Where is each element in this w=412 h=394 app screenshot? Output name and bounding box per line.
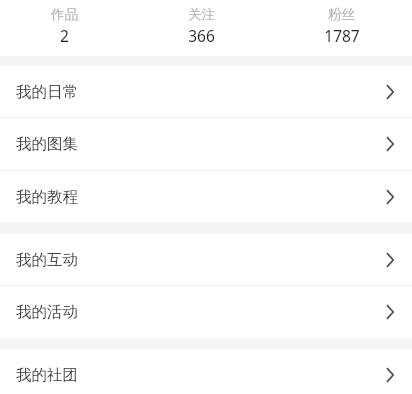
staticText: 关注 bbox=[188, 6, 215, 23]
staticText: 我的社团 bbox=[16, 365, 78, 385]
staticText: 我的活动 bbox=[16, 302, 78, 322]
button[interactable]: 我的互动 bbox=[0, 234, 412, 285]
button[interactable]: 我的日常 bbox=[0, 66, 412, 117]
staticText: 我的图集 bbox=[16, 134, 78, 154]
staticText: 我的互动 bbox=[16, 250, 78, 270]
button[interactable]: 我的教程 bbox=[0, 171, 412, 222]
button[interactable]: 粉丝 bbox=[277, 0, 406, 56]
staticText: 2 bbox=[60, 25, 69, 46]
button[interactable]: 我的社团 bbox=[0, 349, 412, 394]
staticText: 366 bbox=[188, 25, 215, 46]
staticText: 我的教程 bbox=[16, 187, 78, 207]
button[interactable]: 作品 bbox=[0, 0, 129, 56]
button[interactable]: 我的活动 bbox=[0, 286, 412, 338]
staticText: 作品 bbox=[51, 6, 78, 23]
button[interactable]: 关注 bbox=[137, 0, 266, 56]
staticText: 1787 bbox=[324, 25, 360, 46]
button[interactable]: 我的图集 bbox=[0, 118, 412, 170]
staticText: 我的日常 bbox=[16, 82, 78, 102]
staticText: 粉丝 bbox=[328, 6, 355, 23]
